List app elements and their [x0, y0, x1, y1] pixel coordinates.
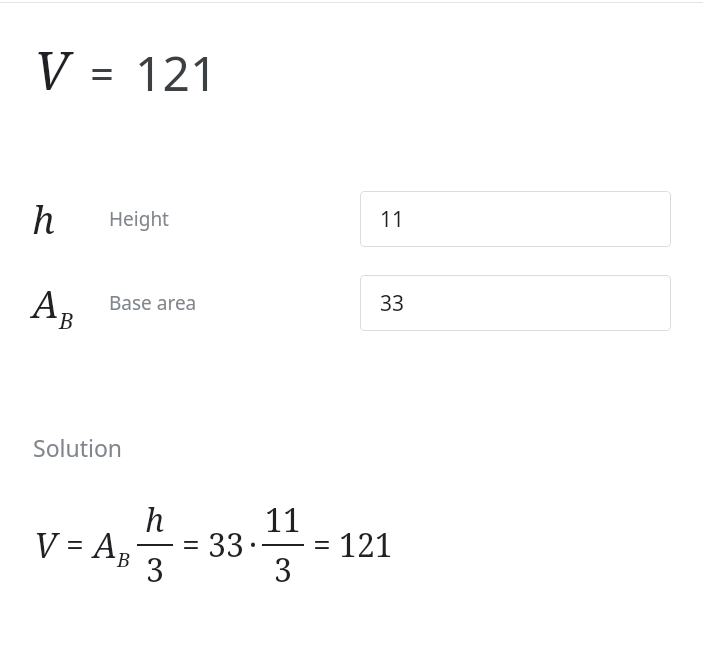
- staticText: ·: [249, 523, 258, 567]
- staticText: A: [93, 522, 117, 568]
- staticText: h: [145, 498, 165, 542]
- staticText: V: [34, 522, 57, 568]
- staticText: 121: [135, 40, 218, 105]
- staticText: Base area: [109, 290, 197, 316]
- staticText: =: [313, 523, 331, 567]
- staticText: A: [32, 277, 59, 329]
- staticText: =: [182, 523, 200, 567]
- staticText: 121: [339, 523, 393, 567]
- staticText: 33: [208, 523, 244, 567]
- staticText: =: [66, 523, 84, 567]
- button[interactable]: Base area: [360, 275, 671, 331]
- button[interactable]: Height: [360, 191, 671, 247]
- staticText: 11: [265, 498, 301, 542]
- staticText: V: [34, 34, 70, 105]
- staticText: h: [32, 193, 55, 245]
- staticText: B: [59, 305, 74, 335]
- staticText: 3: [146, 548, 164, 592]
- staticText: =: [90, 44, 115, 101]
- staticText: Height: [109, 206, 169, 232]
- staticText: 11: [380, 205, 405, 234]
- staticText: B: [117, 546, 131, 573]
- staticText: 3: [274, 548, 292, 592]
- staticText: Solution: [33, 432, 123, 463]
- staticText: 33: [380, 289, 405, 318]
